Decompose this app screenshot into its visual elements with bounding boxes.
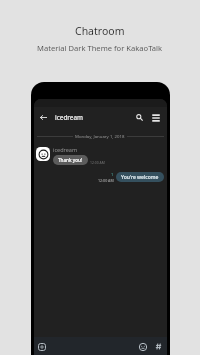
button[interactable]: Back [36,110,51,125]
staticText: Chatroom [75,24,125,38]
staticText: 12:00 AM [90,160,105,165]
staticText: You're welcome [121,174,159,181]
button[interactable]: Search [132,110,147,125]
staticText: 1 [111,172,114,177]
staticText: 12:00 AM [98,178,114,183]
staticText: Material Dark Theme for KakaoTalk [37,43,163,53]
button[interactable]: Emoticon [136,340,149,353]
staticText: Thank you! [58,157,83,163]
staticText: icedream [53,146,78,153]
staticText: Monday, January 1, 2018 [75,133,125,139]
button[interactable]: Hashtag [152,340,165,353]
button[interactable]: Add attachment [35,340,48,353]
button[interactable]: Menu [148,110,163,125]
staticText: icedream [55,113,84,122]
